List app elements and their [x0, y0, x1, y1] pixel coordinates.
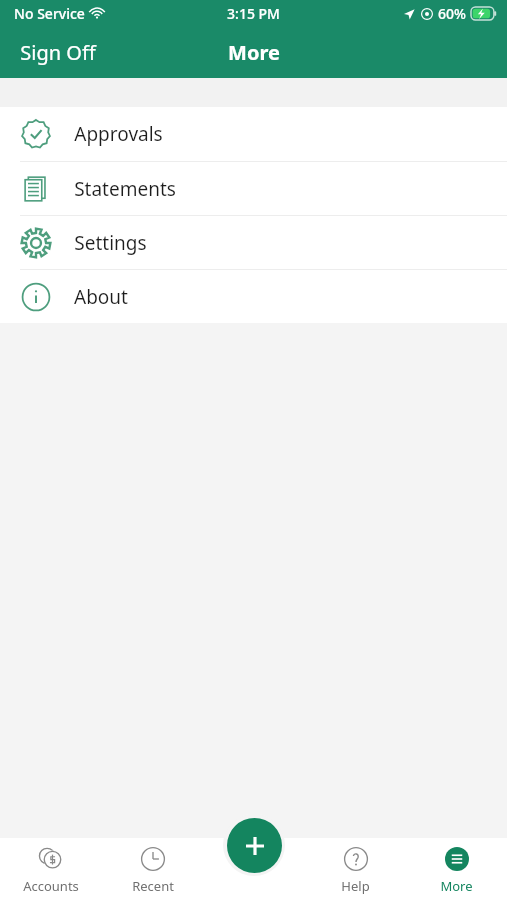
button[interactable]: Settings: [0, 216, 507, 269]
button[interactable]: Accounts: [0, 838, 102, 900]
staticText: Approvals: [74, 121, 163, 147]
staticText: 60%: [438, 4, 466, 23]
staticText: Help: [341, 877, 370, 895]
button[interactable]: Approvals: [0, 107, 507, 161]
staticText: Settings: [74, 230, 147, 256]
staticText: Accounts: [23, 877, 79, 895]
staticText: More: [440, 877, 473, 895]
button[interactable]: Sign Off: [0, 31, 116, 74]
button[interactable]: Recent: [102, 838, 204, 900]
staticText: About: [74, 284, 128, 310]
staticText: No Service: [14, 4, 85, 23]
button[interactable]: More: [406, 838, 507, 900]
button[interactable]: About: [0, 270, 507, 323]
staticText: More: [228, 39, 280, 66]
staticText: Statements: [74, 176, 176, 202]
button[interactable]: Statements: [0, 162, 507, 215]
staticText: Recent: [132, 877, 174, 895]
button[interactable]: Help: [305, 838, 406, 900]
staticText: Sign Off: [20, 39, 96, 66]
staticText: 3:15 PM: [227, 4, 280, 23]
button[interactable]: Add: [227, 818, 282, 873]
